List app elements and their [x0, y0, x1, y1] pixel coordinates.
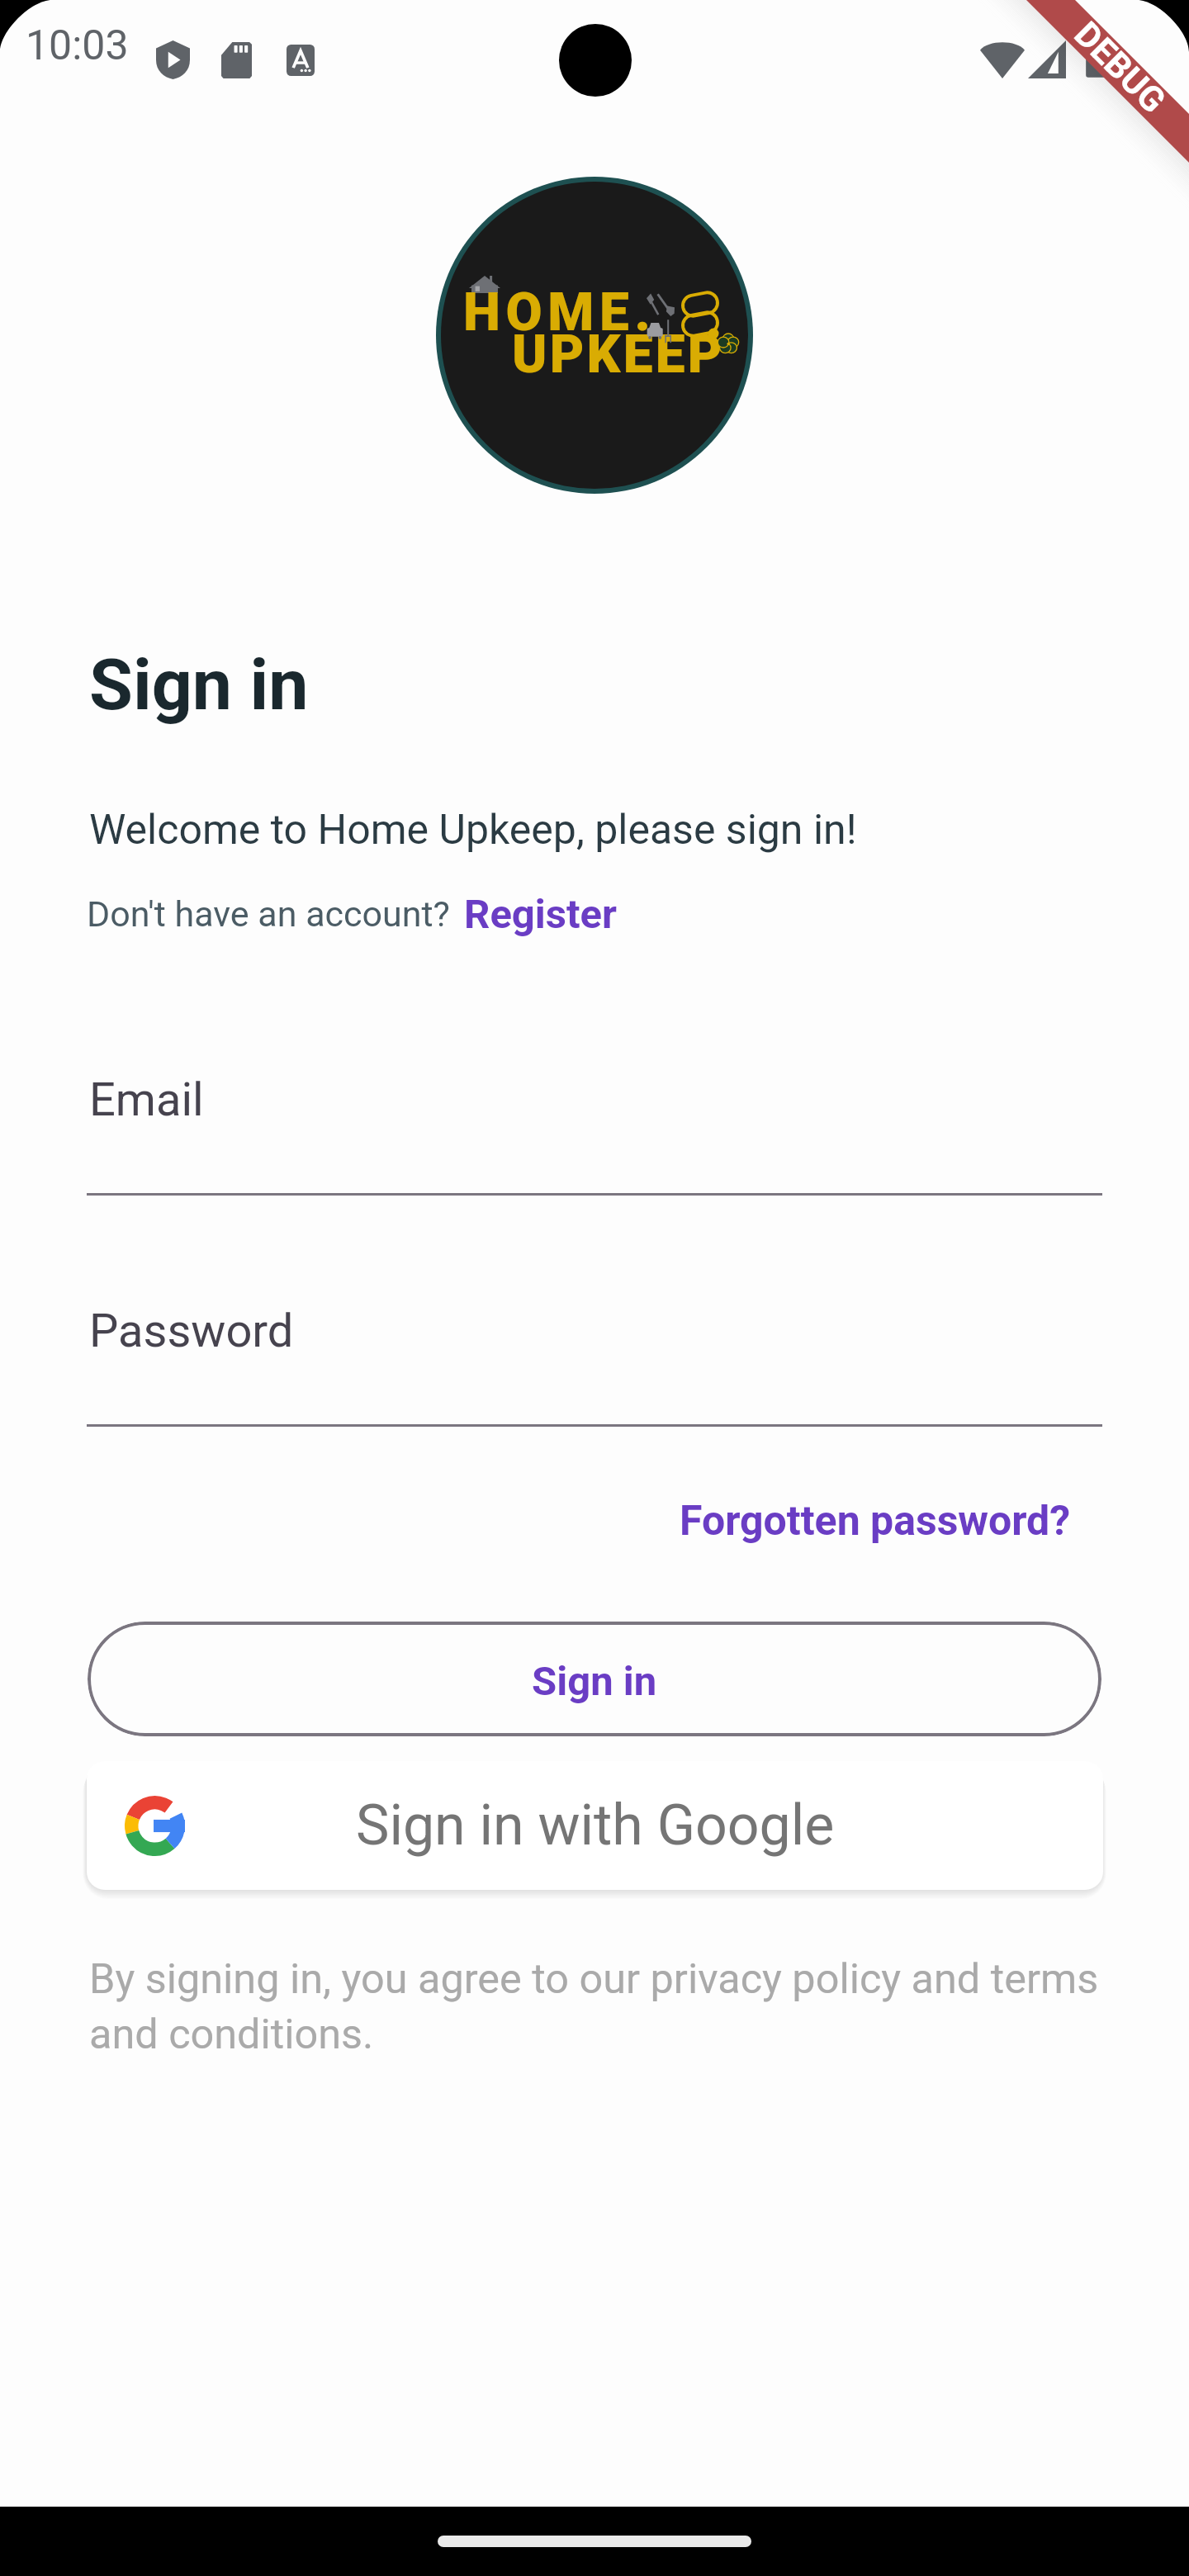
button[interactable]: Sign in with Google: [87, 1761, 1103, 1890]
button[interactable]: Email: [87, 1057, 1102, 1196]
staticText: Don't have an account?: [87, 893, 450, 935]
staticText: Welcome to Home Upkeep, please sign in!: [89, 806, 857, 855]
staticText: By signing in, you agree to our privacy …: [89, 1954, 1117, 2058]
staticText: Sign in: [89, 643, 309, 727]
other: Keyboard language: [287, 45, 315, 76]
button[interactable]: Forgotten password?: [651, 1467, 1099, 1575]
staticText: UPKEEP: [512, 324, 725, 386]
other: Wi-Fi: [980, 40, 1025, 78]
other: Play Protect: [156, 40, 190, 79]
button[interactable]: Register: [464, 891, 617, 938]
staticText: Sign in with Google: [356, 1792, 835, 1859]
other: Battery: [1084, 39, 1110, 79]
other: Mobile signal: [1028, 40, 1066, 78]
button[interactable]: Sign in: [88, 1622, 1101, 1736]
staticText: Email: [89, 1073, 204, 1127]
staticText: HOME.: [463, 282, 656, 343]
staticText: Sign in: [532, 1658, 657, 1705]
staticText: Forgotten password?: [680, 1497, 1071, 1546]
button[interactable]: Password: [87, 1288, 1102, 1427]
staticText: DEBUG: [1066, 14, 1174, 121]
staticText: 10:03: [26, 21, 129, 70]
other: SD card: [221, 42, 252, 78]
staticText: Password: [89, 1304, 294, 1358]
